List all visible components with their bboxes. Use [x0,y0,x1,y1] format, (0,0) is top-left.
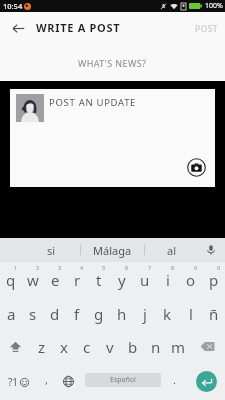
button[interactable]: z [31,330,53,363]
button[interactable]: d [44,296,66,330]
button[interactable]: Shift [0,330,31,363]
button[interactable]: v [98,330,121,363]
staticText: b [128,337,138,357]
staticText: , [45,372,48,387]
staticText: z [38,337,46,357]
button[interactable]: ?1 [0,363,36,400]
staticText: 5 [102,264,106,271]
staticText: al [167,243,177,258]
staticText: k [163,304,172,324]
staticText: c [83,337,91,357]
button[interactable]: b [121,330,144,363]
button[interactable]: p [202,262,225,296]
button[interactable]: Add photo [186,157,206,177]
staticText: 100% [205,1,223,11]
button[interactable]: s [22,296,44,330]
staticText: f [74,304,80,324]
staticText: 8 [171,264,175,271]
button[interactable]: l [179,296,202,330]
staticText: 10:54 [3,1,23,11]
staticText: 9 [194,264,198,271]
button[interactable]: w [22,262,44,296]
button[interactable]: u [133,262,156,296]
button[interactable]: Backspace [190,330,225,363]
button[interactable]: i [156,262,179,296]
button[interactable]: j [133,296,156,330]
button[interactable]: c [75,330,98,363]
staticText: j [143,304,147,324]
staticText: a [7,304,16,324]
button[interactable]: Enter [187,363,225,400]
button[interactable]: si [0,238,80,262]
staticText: ñ [209,304,219,324]
staticText: x [60,337,68,357]
staticText: POST [195,23,218,35]
button[interactable]: , [36,363,56,400]
staticText: h [117,304,127,324]
staticText: r [74,270,81,290]
button[interactable]: . [161,363,187,400]
button[interactable]: m [167,330,190,363]
staticText: 4 [80,264,84,271]
staticText: ?1 [8,375,19,389]
staticText: y [118,270,126,290]
staticText: 1 [14,264,18,271]
staticText: o [186,270,196,290]
button[interactable]: POST [188,12,225,45]
staticText: 0 [217,264,221,271]
button[interactable]: a [0,296,22,330]
button[interactable]: Back [0,12,36,45]
staticText: Málaga [93,243,132,258]
staticText: WRITE A POST [36,20,121,35]
staticText: 7 [148,264,152,271]
staticText: p [209,270,219,290]
staticText: e [51,270,60,290]
button[interactable]: o [179,262,202,296]
staticText: POST AN UPDATE [49,96,137,109]
button[interactable]: Español [85,373,161,387]
button[interactable]: x [53,330,75,363]
button[interactable]: t [88,262,110,296]
button[interactable]: ñ [202,296,225,330]
staticText: t [96,270,102,290]
staticText: s [29,304,37,324]
staticText: q [6,270,16,290]
staticText: 2 [36,264,40,271]
button[interactable]: r [66,262,88,296]
staticText: u [140,270,150,290]
staticText: WHAT'S NEWS? [78,57,147,69]
button[interactable]: al [145,238,197,262]
button[interactable]: f [66,296,88,330]
button[interactable]: q [0,262,22,296]
staticText: 6 [125,264,129,271]
button[interactable]: h [110,296,133,330]
button[interactable]: e [44,262,66,296]
button[interactable]: Voice input [197,238,225,262]
button[interactable]: Málaga [81,238,144,262]
staticText: m [171,337,186,357]
staticText: d [50,304,60,324]
button[interactable]: k [156,296,179,330]
button[interactable]: g [88,296,110,330]
button[interactable]: POST AN UPDATE [10,89,215,187]
button[interactable]: y [110,262,133,296]
staticText: i [166,270,170,290]
staticText: l [189,304,193,324]
staticText: 3 [58,264,62,271]
staticText: g [94,304,104,324]
staticText: Español [110,375,136,385]
staticText: v [106,337,114,357]
staticText: . [173,372,176,387]
button[interactable]: n [144,330,167,363]
staticText: w [27,270,39,290]
staticText: n [151,337,161,357]
staticText: si [47,243,56,258]
button[interactable]: Change language [56,363,80,400]
